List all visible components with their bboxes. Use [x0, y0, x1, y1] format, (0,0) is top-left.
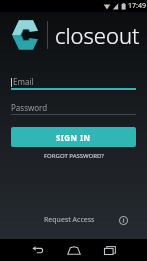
staticText: Request Access	[44, 215, 95, 225]
staticText: SIGN IN	[56, 132, 91, 143]
button[interactable]	[20, 239, 56, 261]
staticText: closeout	[55, 20, 140, 50]
staticText: Password	[11, 102, 48, 113]
button[interactable]: SIGN IN	[11, 127, 136, 147]
button[interactable]	[56, 239, 92, 261]
button[interactable]: Email	[11, 76, 136, 90]
button[interactable]: Password	[11, 102, 136, 115]
button[interactable]: Request Access	[0, 208, 147, 239]
button[interactable]	[92, 239, 128, 261]
button[interactable]: FORGOT PASSWORD?	[0, 152, 147, 160]
staticText: 17:49	[128, 1, 146, 11]
staticText: FORGOT PASSWORD?	[44, 152, 104, 160]
staticText: Email	[13, 76, 34, 87]
